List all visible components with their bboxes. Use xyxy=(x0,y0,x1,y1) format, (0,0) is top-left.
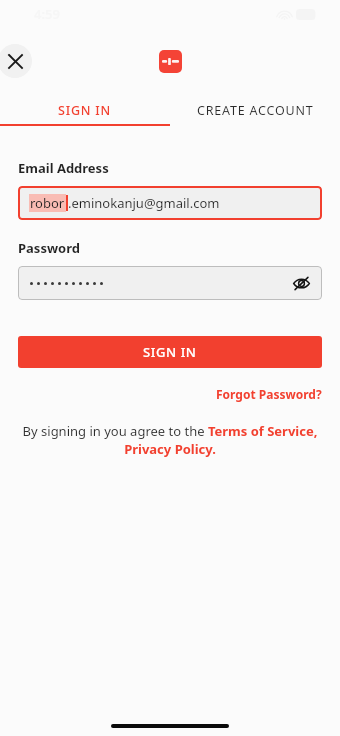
staticText: SIGN IN xyxy=(58,102,112,119)
staticText: Forgot Password? xyxy=(216,386,322,402)
staticText: .eminokanju@gmail.com xyxy=(68,194,220,212)
button[interactable]: Close xyxy=(0,44,32,78)
button[interactable]: robor xyxy=(18,186,322,220)
button[interactable]: By signing in you agree to the Terms of … xyxy=(18,422,322,458)
staticText: Password xyxy=(18,239,80,257)
button[interactable]: Show password xyxy=(18,266,322,300)
staticText: By signing in you agree to the Terms of … xyxy=(18,422,322,458)
staticText: robor xyxy=(30,194,65,212)
button[interactable]: SIGN IN xyxy=(0,96,170,124)
button[interactable]: Show password xyxy=(288,270,314,296)
button[interactable]: SIGN IN xyxy=(18,336,322,368)
button[interactable]: CREATE ACCOUNT xyxy=(170,96,340,124)
staticText: SIGN IN xyxy=(143,343,197,361)
staticText: Email Address xyxy=(18,159,109,177)
staticText: CREATE ACCOUNT xyxy=(197,102,314,119)
button[interactable]: Forgot Password? xyxy=(216,384,322,404)
